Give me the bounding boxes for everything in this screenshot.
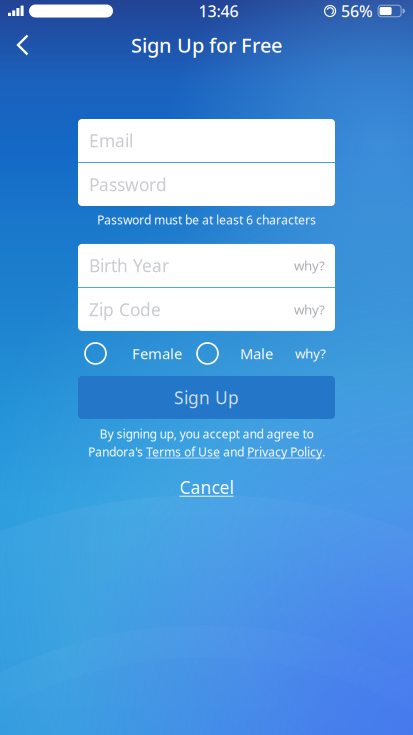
staticText: Pandora's <box>88 444 146 460</box>
button[interactable]: Female <box>85 336 182 370</box>
staticText: Email <box>89 129 133 152</box>
button[interactable]: Sign Up <box>78 376 335 419</box>
button[interactable]: Privacy Policy <box>247 444 322 460</box>
staticText: Privacy Policy <box>247 444 322 460</box>
staticText: . <box>322 444 325 460</box>
staticText: why? <box>294 257 325 274</box>
staticText: Birth Year <box>89 254 169 277</box>
button[interactable]: Back <box>0 23 48 67</box>
staticText: why? <box>295 345 326 362</box>
staticText: 56% <box>341 0 373 22</box>
staticText: Sign Up for Free <box>131 32 282 58</box>
button[interactable]: Email <box>78 119 335 162</box>
staticText: and <box>220 444 247 460</box>
staticText: Terms of Use <box>146 444 220 460</box>
staticText: By signing up, you accept and agree to <box>99 426 313 442</box>
button[interactable]: Terms of Use <box>146 444 220 460</box>
staticText: 13:46 <box>199 0 239 22</box>
button[interactable]: Password <box>78 163 335 206</box>
staticText: Password must be at least 6 characters <box>97 212 316 228</box>
button[interactable]: Cancel <box>163 472 249 503</box>
staticText: Male <box>240 344 273 363</box>
button[interactable]: Zip Code <box>78 288 335 331</box>
staticText: Password <box>89 173 167 196</box>
staticText: why? <box>294 301 325 318</box>
button[interactable]: Birth Year <box>78 244 335 287</box>
staticText: Sign Up <box>174 386 239 409</box>
staticText: Cancel <box>179 476 233 499</box>
staticText: Zip Code <box>89 298 161 321</box>
button[interactable]: Male <box>197 336 273 370</box>
staticText: Female <box>132 344 182 363</box>
button[interactable]: why? <box>295 336 326 370</box>
